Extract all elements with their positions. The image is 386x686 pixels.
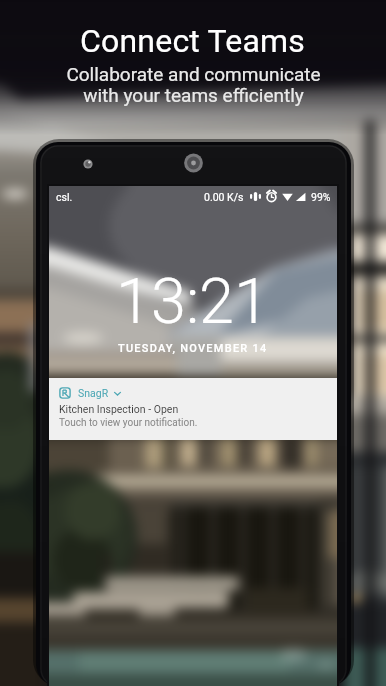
staticText: 0.00 K/s <box>204 191 244 203</box>
staticText: Touch to view your notification. <box>59 417 198 429</box>
staticText: Kitchen Inspection - Open <box>59 403 179 415</box>
staticText: SnagR <box>78 387 109 399</box>
staticText: Collaborate and communicate with your te… <box>66 63 321 107</box>
button[interactable]: SnagR <box>49 378 337 440</box>
staticText: csl. <box>56 191 73 203</box>
staticText: Connect Teams <box>80 22 306 60</box>
staticText: 13:21 <box>116 265 270 339</box>
staticText: 99% <box>311 191 331 203</box>
staticText: TUESDAY, NOVEMBER 14 <box>118 342 268 355</box>
